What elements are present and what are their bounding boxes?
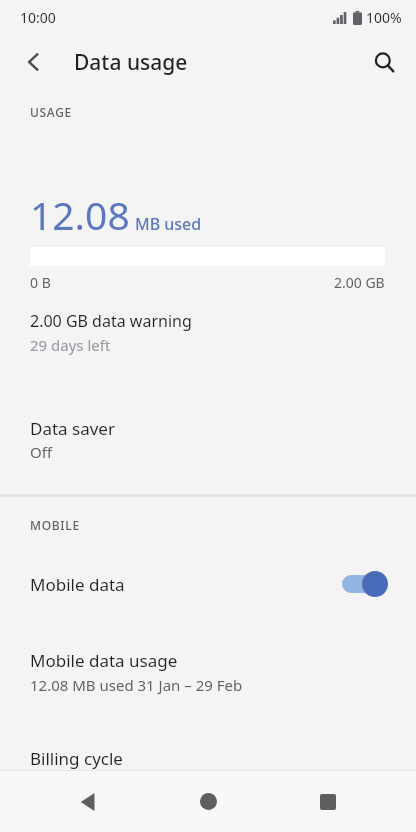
button[interactable]: Mobile data: [0, 563, 416, 605]
button[interactable]: Home: [176, 771, 240, 832]
staticText: 12.08: [30, 188, 130, 241]
button[interactable]: Mobile data toggle, on: [340, 569, 392, 599]
staticText: 29 days left: [30, 335, 111, 355]
staticText: Mobile data: [30, 573, 340, 596]
staticText: USAGE: [30, 104, 72, 120]
staticText: MB used: [135, 213, 202, 235]
button[interactable]: Back: [10, 38, 58, 86]
button[interactable]: Back: [56, 771, 120, 832]
button[interactable]: Data saver: [0, 415, 416, 472]
staticText: Data usage: [74, 48, 188, 77]
staticText: 10:00: [20, 8, 56, 27]
staticText: 100%: [366, 8, 402, 27]
staticText: MOBILE: [30, 517, 80, 533]
staticText: 0 B: [30, 273, 51, 292]
staticText: Data saver: [30, 417, 115, 440]
button[interactable]: 2.00 GB data warning: [0, 308, 416, 363]
staticText: 12.08 MB used 31 Jan – 29 Feb: [30, 675, 243, 695]
staticText: 2.00 GB: [334, 273, 385, 292]
staticText: Mobile data usage: [30, 649, 178, 672]
button[interactable]: Recent apps: [296, 771, 360, 832]
staticText: Off: [30, 442, 53, 462]
staticText: Billing cycle: [30, 747, 123, 770]
button[interactable]: Billing cycle: [0, 747, 416, 770]
button[interactable]: Search: [360, 38, 408, 86]
button[interactable]: Mobile data usage: [0, 647, 416, 703]
staticText: 2.00 GB data warning: [30, 310, 192, 332]
